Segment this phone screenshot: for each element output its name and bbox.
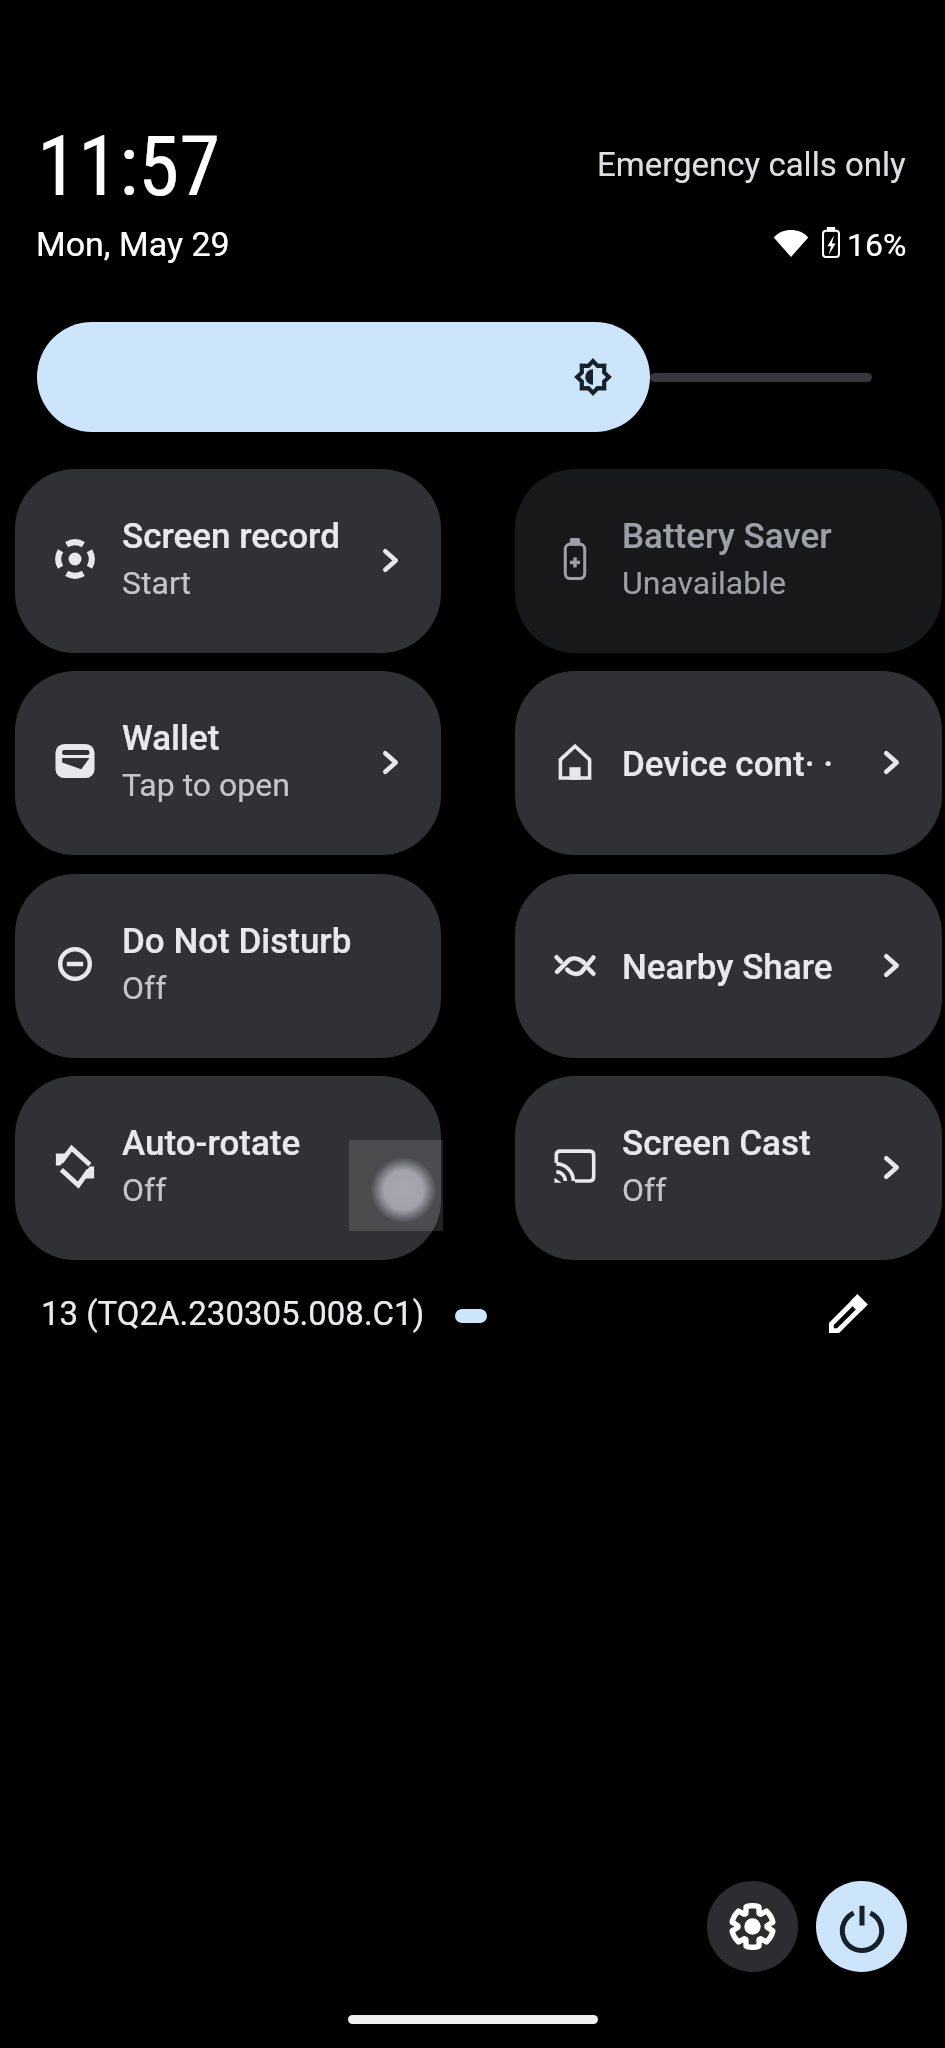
- staticText: Emergency calls only: [597, 145, 906, 184]
- staticText: Device cont· ·: [622, 744, 834, 785]
- button[interactable]: Device cont· ·: [515, 671, 942, 855]
- staticText: Start: [122, 564, 191, 602]
- button[interactable]: Edit tiles: [802, 1266, 896, 1360]
- button[interactable]: Screen Cast: [515, 1076, 942, 1260]
- staticText: Wallet: [122, 718, 220, 759]
- staticText: Screen Cast: [622, 1123, 811, 1164]
- staticText: Off: [622, 1171, 667, 1209]
- staticText: Auto-rotate: [122, 1123, 301, 1164]
- staticText: Tap to open: [122, 766, 290, 804]
- button[interactable]: Wallet: [15, 671, 441, 855]
- button[interactable]: Auto-rotate: [15, 1076, 441, 1260]
- staticText: 13 (TQ2A.230305.008.C1): [41, 1294, 425, 1333]
- button[interactable]: Brightness: [37, 322, 907, 432]
- button[interactable]: Do Not Disturb: [15, 874, 441, 1058]
- staticText: Battery Saver: [622, 516, 832, 557]
- staticText: 16%: [847, 226, 907, 264]
- button[interactable]: Screen record: [15, 469, 441, 653]
- button[interactable]: Nearby Share: [515, 874, 942, 1058]
- button[interactable]: Settings: [707, 1881, 798, 1972]
- staticText: Off: [122, 1171, 167, 1209]
- staticText: Off: [122, 969, 167, 1007]
- staticText: Nearby Share: [622, 947, 833, 988]
- staticText: 11:57: [37, 118, 221, 215]
- staticText: Mon, May 29: [36, 224, 230, 264]
- staticText: Unavailable: [622, 564, 786, 602]
- staticText: Do Not Disturb: [122, 921, 352, 962]
- button[interactable]: Power: [816, 1881, 907, 1972]
- staticText: Screen record: [122, 516, 340, 557]
- button[interactable]: Battery Saver: [515, 469, 942, 653]
